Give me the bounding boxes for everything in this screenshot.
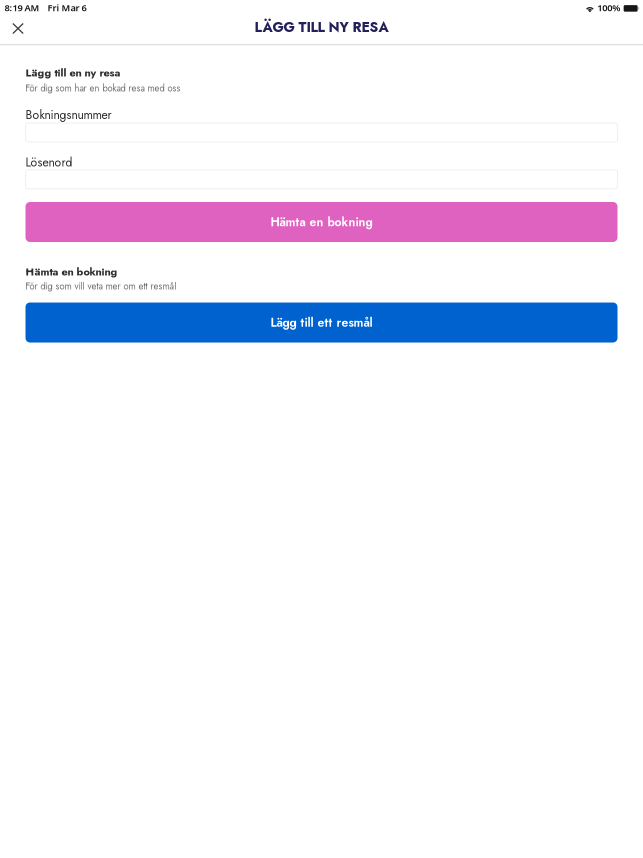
- staticText: LÄGG TILL NY RESA: [254, 17, 388, 37]
- staticText: Fri Mar 6: [48, 1, 87, 14]
- staticText: Hämta en bokning: [270, 213, 372, 231]
- staticText: Hämta en bokning: [25, 264, 117, 280]
- staticText: 100%: [597, 1, 620, 14]
- button[interactable]: Lägg till ett resmål: [25, 302, 617, 342]
- staticText: 8:19 AM: [5, 1, 40, 14]
- staticText: För dig som har en bokad resa med oss: [25, 82, 180, 95]
- staticText: Lägg till ett resmål: [270, 314, 372, 331]
- button[interactable]: Hämta en bokning: [25, 202, 617, 242]
- staticText: För dig som vill veta mer om ett resmål: [25, 280, 176, 293]
- staticText: Lägg till en ny resa: [25, 65, 120, 81]
- staticText: Bokningsnummer: [25, 106, 111, 123]
- staticText: Lösenord: [25, 153, 72, 171]
- button[interactable]: Stäng: [3, 15, 33, 41]
